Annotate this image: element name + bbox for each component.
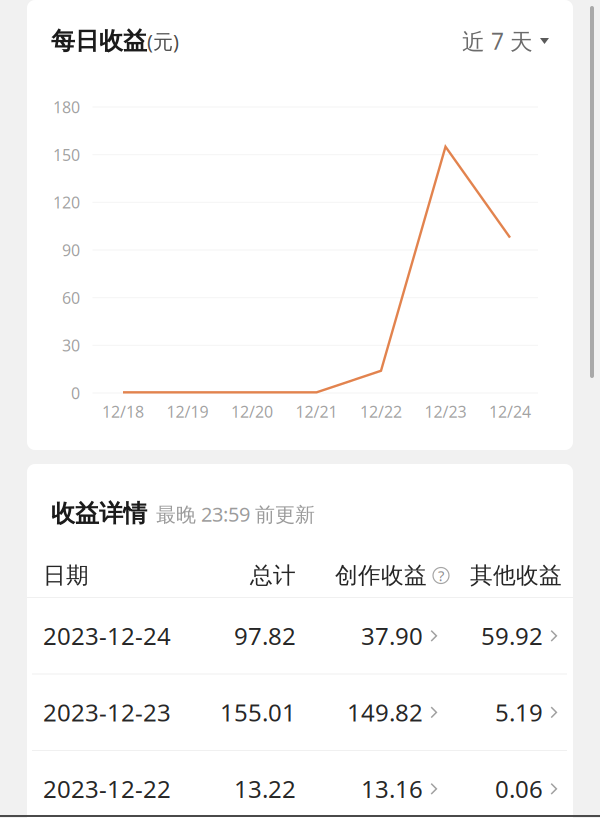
staticText: 90 [62,239,80,261]
button[interactable]: 59.92 [439,598,559,673]
staticText: 近 7 天 [462,26,533,56]
staticText: 37.90 [361,620,423,652]
staticText: 60 [62,287,80,308]
staticText: 150 [53,144,80,165]
staticText: 149.82 [347,696,423,728]
staticText: 155.01 [220,696,296,728]
staticText: 其他收益 [470,562,562,589]
staticText: 总计 [250,562,296,589]
staticText: ? [438,566,444,585]
staticText: 每日收益 [51,26,147,56]
staticText: 0 [71,382,80,404]
staticText: 2023-12-24 [43,620,171,652]
staticText: 2023-12-22 [43,773,171,805]
staticText: 最晚 23:59 前更新 [156,501,315,527]
staticText: 13.16 [361,773,423,805]
staticText: 120 [53,192,80,213]
button[interactable]: 37.90 [296,598,439,673]
staticText: 0.06 [495,773,543,805]
staticText: 12/20 [231,401,273,422]
staticText: 5.19 [495,696,543,728]
staticText: 180 [53,96,80,118]
button[interactable]: 0.06 [439,751,559,818]
staticText: 收益详情 [51,499,147,528]
button[interactable]: 149.82 [296,674,439,750]
staticText: 日期 [43,562,89,589]
staticText: 12/19 [166,401,208,422]
staticText: 12/24 [489,401,531,422]
staticText: 创作收益 [335,562,427,589]
button[interactable]: 5.19 [439,674,559,750]
staticText: (元) [147,28,179,55]
staticText: 30 [62,335,80,356]
button[interactable]: 13.16 [296,751,439,818]
button[interactable]: 近 7 天 [462,26,549,56]
staticText: 12/18 [102,401,144,422]
staticText: 12/23 [424,401,466,422]
staticText: 97.82 [234,620,296,652]
staticText: 59.92 [481,620,543,652]
staticText: 2023-12-23 [43,696,171,728]
staticText: 13.22 [234,773,296,805]
staticText: 12/21 [295,401,337,422]
staticText: 12/22 [360,401,402,422]
